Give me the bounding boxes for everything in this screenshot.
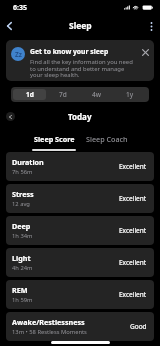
staticText: Awake/Restlessness xyxy=(12,317,85,327)
staticText: Get to know your sleep xyxy=(30,47,109,56)
staticText: 1d xyxy=(26,90,34,99)
staticText: Deep xyxy=(12,221,31,231)
staticText: Excellent xyxy=(119,194,147,203)
staticText: Stress xyxy=(12,189,34,199)
button[interactable]: Duration xyxy=(6,152,154,181)
staticText: Sleep Coach xyxy=(86,134,128,144)
button[interactable]: More options xyxy=(142,17,160,35)
staticText: 7h 56m xyxy=(12,168,33,176)
staticText: 1y xyxy=(126,90,134,99)
button[interactable]: Light xyxy=(6,248,154,277)
staticText: Zz xyxy=(15,50,22,59)
button[interactable]: REM xyxy=(6,280,154,309)
button[interactable]: 7d xyxy=(46,89,79,100)
button[interactable]: Deep xyxy=(6,216,154,245)
staticText: REM xyxy=(12,285,28,295)
staticText: Excellent xyxy=(119,162,147,171)
staticText: Excellent xyxy=(119,258,147,267)
staticText: 12 avg xyxy=(12,200,30,208)
button[interactable]: Back xyxy=(0,17,18,35)
staticText: 1h 59m xyxy=(12,296,33,304)
staticText: Duration xyxy=(12,157,44,167)
button[interactable]: Stress xyxy=(6,184,154,213)
staticText: Excellent xyxy=(119,290,147,299)
button[interactable]: 1d xyxy=(13,89,46,100)
staticText: 1h 34m xyxy=(12,232,33,240)
staticText: 13m • 58 Restless Moments xyxy=(12,328,87,336)
staticText: Sleep xyxy=(69,20,92,32)
staticText: Light xyxy=(12,253,31,263)
staticText: Today xyxy=(68,111,92,122)
button[interactable]: Awake/Restlessness xyxy=(6,312,154,341)
staticText: Find all the key information you need to… xyxy=(30,58,133,79)
button[interactable]: 4w xyxy=(79,89,113,100)
staticText: 6:35 xyxy=(13,3,27,13)
button[interactable]: Sleep Score xyxy=(32,134,76,151)
button[interactable]: 1y xyxy=(113,89,147,100)
staticText: 7d xyxy=(59,90,67,99)
staticText: Good xyxy=(130,322,147,331)
staticText: Sleep Score xyxy=(34,134,75,144)
button[interactable]: Previous day xyxy=(6,112,15,121)
button[interactable]: Close xyxy=(138,45,152,59)
staticText: Excellent xyxy=(119,226,147,235)
button[interactable]: Zz xyxy=(6,40,154,81)
staticText: 4w xyxy=(92,90,101,99)
button[interactable]: Sleep Coach xyxy=(85,134,129,144)
staticText: 4h 24m xyxy=(12,264,33,272)
